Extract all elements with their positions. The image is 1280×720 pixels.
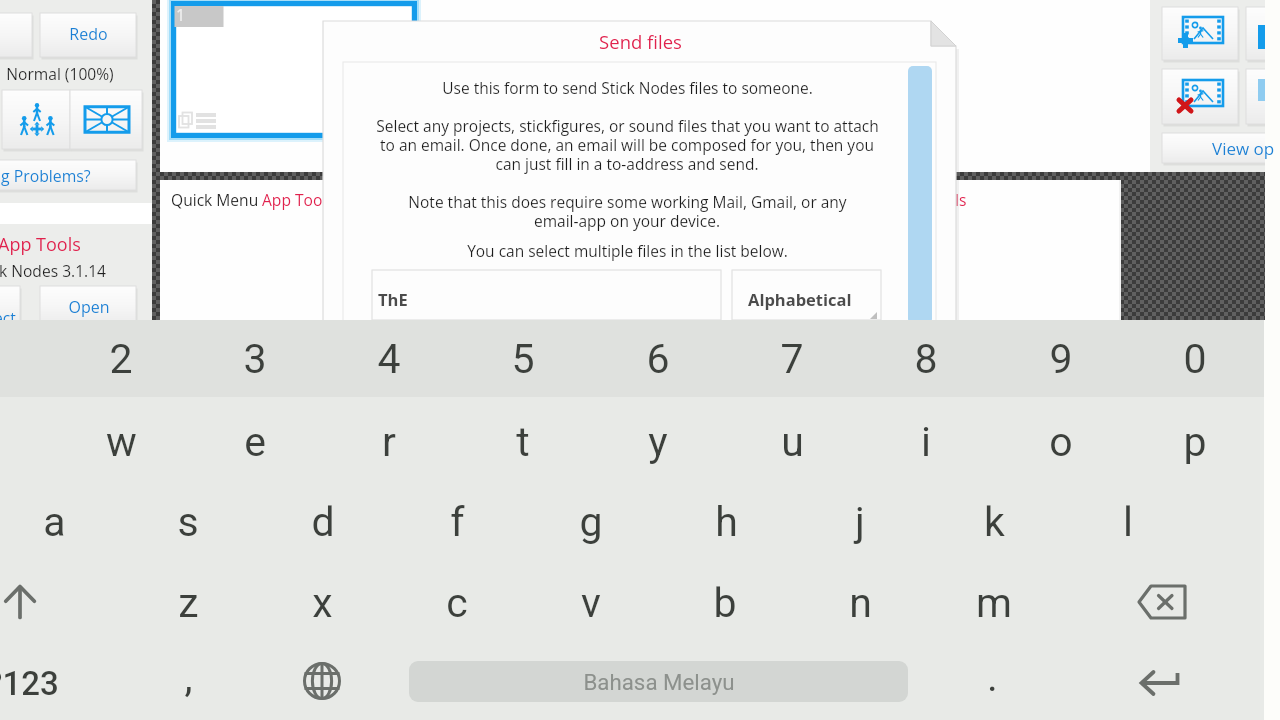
- staticText: 7: [780, 335, 804, 383]
- button[interactable]: h: [661, 486, 791, 558]
- button[interactable]: s: [123, 486, 253, 558]
- staticText: App Tools: [0, 232, 81, 257]
- button[interactable]: View op: [1162, 133, 1280, 163]
- button[interactable]: 2: [56, 323, 186, 395]
- staticText: 0: [1183, 335, 1207, 383]
- button[interactable]: ?123: [0, 647, 87, 719]
- button[interactable]: Change language: [267, 645, 377, 717]
- button[interactable]: c: [392, 567, 522, 639]
- button[interactable]: d: [258, 486, 388, 558]
- staticText: j: [855, 498, 865, 546]
- staticText: z: [178, 579, 199, 627]
- button[interactable]: 7: [727, 323, 857, 395]
- staticText: l: [1123, 498, 1133, 546]
- button[interactable]: b: [660, 567, 790, 639]
- staticText: g Problems?: [1, 165, 91, 187]
- button[interactable]: p: [1130, 406, 1260, 478]
- button[interactable]: ,: [123, 641, 253, 713]
- button[interactable]: j: [795, 486, 925, 558]
- staticText: 4: [377, 335, 401, 383]
- staticText: s: [177, 498, 199, 546]
- button[interactable]: n: [795, 567, 925, 639]
- button[interactable]: Redo: [40, 21, 136, 47]
- staticText: 1: [176, 4, 186, 26]
- button[interactable]: 8: [861, 323, 991, 395]
- button[interactable]: u: [727, 406, 857, 478]
- staticText: Bahasa Melayu: [583, 669, 735, 695]
- staticText: h: [715, 498, 738, 546]
- staticText: ls: [955, 189, 967, 210]
- button[interactable]: o: [996, 406, 1126, 478]
- button[interactable]: r: [324, 406, 454, 478]
- staticText: i: [921, 418, 931, 466]
- button[interactable]: z: [123, 567, 253, 639]
- staticText: 9: [1049, 335, 1073, 383]
- button[interactable]: 0: [1130, 323, 1260, 395]
- staticText: w: [106, 418, 137, 466]
- button[interactable]: v: [526, 567, 656, 639]
- button[interactable]: 5: [458, 323, 588, 395]
- staticText: Open: [68, 296, 110, 318]
- button[interactable]: Enter: [1105, 647, 1215, 719]
- staticText: Alphabetical: [748, 288, 852, 310]
- staticText: Redo: [69, 23, 108, 45]
- staticText: x: [312, 579, 333, 627]
- staticText: 3: [243, 335, 267, 383]
- staticText: Use this form to send Stick Nodes files …: [442, 77, 813, 98]
- staticText: n: [849, 579, 872, 627]
- staticText: v: [581, 579, 601, 627]
- button[interactable]: y: [593, 406, 723, 478]
- button[interactable]: x: [257, 567, 387, 639]
- staticText: ,: [184, 653, 193, 701]
- staticText: .: [987, 653, 998, 701]
- staticText: p: [1183, 418, 1207, 466]
- staticText: r: [382, 418, 396, 466]
- button[interactable]: 6: [593, 323, 723, 395]
- staticText: y: [648, 418, 668, 466]
- button[interactable]: w: [56, 406, 186, 478]
- staticText: f: [450, 498, 465, 546]
- button[interactable]: Backspace: [1107, 566, 1217, 638]
- staticText: g: [579, 498, 603, 546]
- staticText: Select any projects, stickfigures, or so…: [376, 115, 879, 136]
- button[interactable]: g: [526, 486, 656, 558]
- button[interactable]: 3: [190, 323, 320, 395]
- button[interactable]: i: [861, 406, 991, 478]
- button[interactable]: Open: [41, 294, 137, 320]
- staticText: c: [446, 579, 468, 627]
- button[interactable]: 4: [324, 323, 454, 395]
- staticText: d: [311, 498, 335, 546]
- button[interactable]: t: [458, 406, 588, 478]
- staticText: App Tools: [262, 189, 334, 210]
- staticText: Note that this does require some working…: [408, 191, 847, 212]
- staticText: email-app on your device.: [534, 210, 720, 231]
- staticText: k: [984, 498, 1005, 546]
- staticText: 6: [646, 335, 670, 383]
- button[interactable]: f: [392, 486, 522, 558]
- button[interactable]: Shift: [0, 566, 75, 638]
- staticText: Normal (100%): [6, 63, 114, 84]
- button[interactable]: e: [190, 406, 320, 478]
- staticText: ?123: [0, 664, 59, 703]
- button[interactable]: Bahasa Melayu: [409, 646, 908, 718]
- staticText: t: [516, 418, 530, 466]
- staticText: Send files: [599, 29, 682, 54]
- button[interactable]: k: [929, 486, 1059, 558]
- button[interactable]: m: [929, 567, 1059, 639]
- staticText: 5: [511, 335, 535, 383]
- staticText: Quick Menu: [171, 189, 259, 210]
- staticText: ThE: [378, 288, 408, 310]
- button[interactable]: .: [927, 641, 1057, 713]
- staticText: m: [976, 579, 1012, 627]
- staticText: View op: [1212, 137, 1275, 160]
- button[interactable]: l: [1063, 486, 1193, 558]
- staticText: b: [713, 579, 737, 627]
- button[interactable]: 9: [996, 323, 1126, 395]
- staticText: k Nodes 3.1.14: [0, 260, 107, 281]
- button[interactable]: a: [0, 486, 119, 558]
- staticText: o: [1049, 418, 1073, 466]
- staticText: You can select multiple files in the lis…: [467, 240, 788, 261]
- staticText: 8: [914, 335, 938, 383]
- staticText: e: [244, 418, 266, 466]
- staticText: 2: [109, 335, 133, 383]
